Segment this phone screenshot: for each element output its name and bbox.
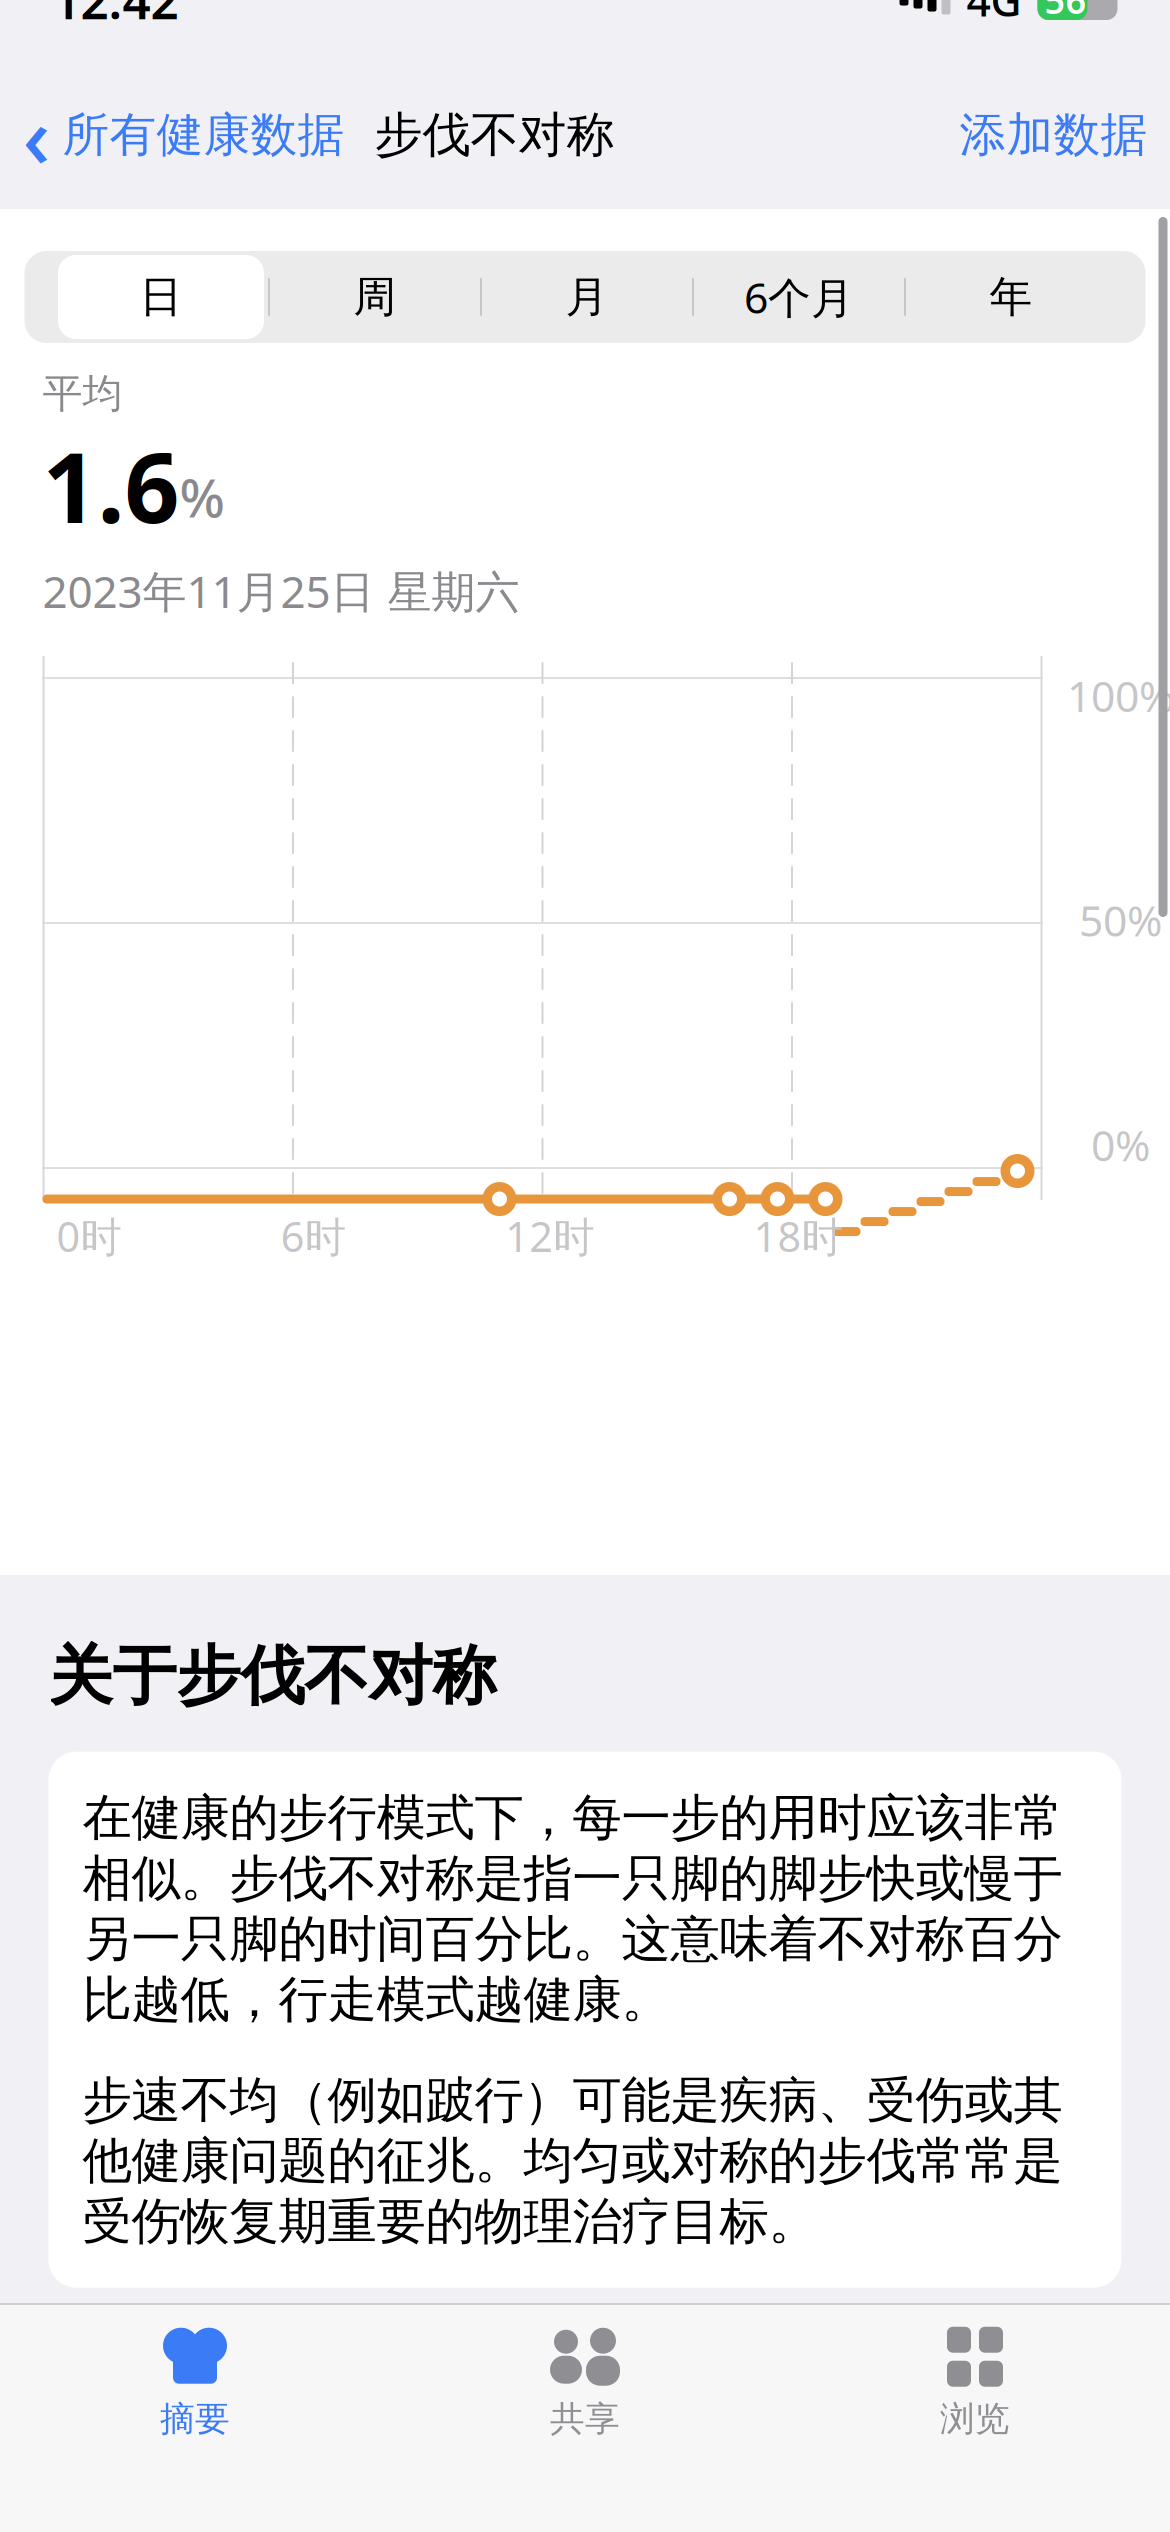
staticText: 在健康的步行模式下，每一步的用时应该非常相似。步伐不对称是指一只脚的脚步快或慢于…	[82, 1788, 1062, 2030]
button[interactable]: 日	[54, 251, 268, 343]
staticText: 共享	[550, 2398, 620, 2440]
staticText: 摘要	[160, 2398, 230, 2440]
staticText: 18时	[753, 1209, 842, 1263]
staticText: 日	[139, 271, 182, 323]
staticText: 平均	[42, 369, 122, 418]
staticText: 关于步伐不对称	[48, 1637, 496, 1716]
staticText: 所有健康数据	[62, 106, 344, 164]
button[interactable]: 月	[482, 251, 692, 343]
staticText: 12:42	[52, 0, 178, 33]
staticText: 56	[1044, 0, 1086, 24]
staticText: 步伐不对称	[374, 105, 614, 164]
staticText: ‹	[22, 78, 50, 192]
staticText: 2023年11月25日 星期六	[42, 562, 519, 620]
staticText: 月	[565, 271, 608, 323]
staticText: 1.6	[42, 422, 179, 550]
staticText: 100%	[1067, 667, 1170, 724]
button[interactable]: 摘要	[0, 2323, 390, 2443]
button[interactable]: 周	[270, 251, 480, 343]
staticText: 4G	[966, 0, 1021, 28]
staticText: %	[179, 461, 224, 532]
button[interactable]: 共享	[390, 2323, 780, 2443]
button[interactable]: 6个月	[694, 251, 904, 343]
staticText: 年	[989, 271, 1032, 323]
staticText: 添加数据	[959, 106, 1147, 164]
button[interactable]: 添加数据	[959, 94, 1147, 176]
staticText: 50%	[1079, 892, 1162, 948]
staticText: 浏览	[940, 2398, 1010, 2440]
staticText: 周	[353, 271, 396, 323]
button[interactable]: 浏览	[780, 2323, 1170, 2443]
button[interactable]: ‹	[22, 66, 344, 204]
staticText: 0时	[56, 1209, 121, 1263]
staticText: 12时	[505, 1209, 594, 1263]
staticText: 6时	[281, 1209, 346, 1263]
button[interactable]: 年	[906, 251, 1116, 343]
staticText: 步速不均（例如跛行）可能是疾病、受伤或其他健康问题的征兆。均匀或对称的步伐常常是…	[82, 2070, 1062, 2252]
staticText: 0%	[1091, 1116, 1150, 1173]
staticText: 6个月	[744, 269, 854, 325]
